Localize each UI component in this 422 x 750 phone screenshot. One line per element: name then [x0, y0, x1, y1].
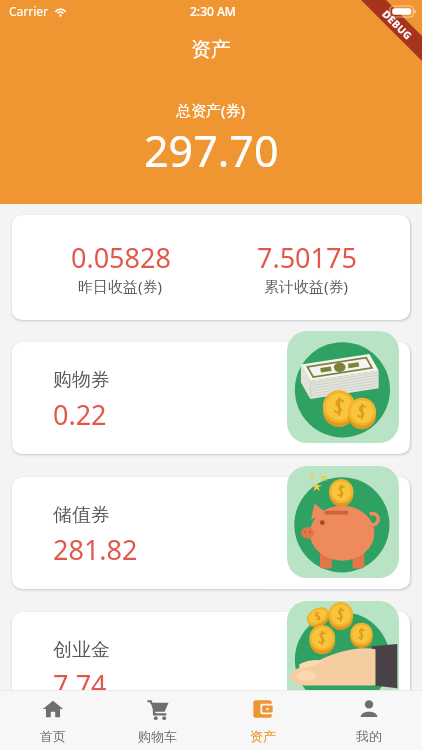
button[interactable]: 0.05828 — [30, 215, 211, 320]
button[interactable]: 购物车 — [105, 691, 210, 750]
staticText: 7.50175 — [257, 239, 357, 276]
staticText: 累计收益(券) — [264, 276, 349, 296]
button[interactable] — [12, 342, 410, 454]
button[interactable]: 我的 — [316, 691, 422, 750]
staticText: 昨日收益(券) — [78, 276, 163, 296]
staticText: 我的 — [356, 728, 382, 744]
staticText: 购物车 — [138, 728, 177, 744]
staticText: 创业金 — [53, 638, 110, 662]
staticText: 2:30 AM — [190, 3, 236, 19]
staticText: 资产 — [250, 728, 276, 744]
staticText: 资产 — [191, 37, 231, 62]
button[interactable]: 7.50175 — [211, 215, 402, 320]
button[interactable]: 资产 — [210, 691, 316, 750]
button[interactable]: 首页 — [0, 691, 105, 750]
staticText: 0.22 — [53, 396, 107, 433]
staticText: 281.82 — [53, 531, 138, 568]
staticText: 首页 — [40, 728, 66, 744]
staticText: 总资产(券) — [176, 100, 246, 120]
button[interactable] — [12, 612, 410, 724]
staticText: 储值券 — [53, 503, 110, 527]
button[interactable] — [12, 477, 410, 589]
button[interactable] — [12, 215, 410, 320]
staticText: 7.74 — [53, 666, 107, 703]
staticText: 0.05828 — [71, 239, 171, 276]
staticText: 购物券 — [53, 368, 110, 392]
staticText: 297.70 — [144, 121, 279, 180]
staticText: Carrier — [9, 3, 49, 19]
staticText: DEBUG — [379, 7, 416, 43]
